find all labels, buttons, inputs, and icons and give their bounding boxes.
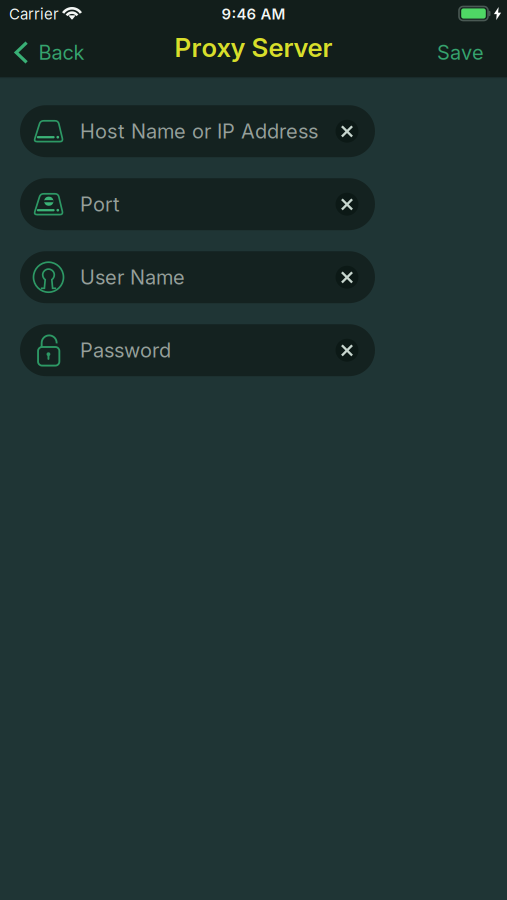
staticText: Save — [437, 40, 484, 65]
button[interactable]: Clear text — [335, 339, 358, 362]
button[interactable]: Clear text — [335, 193, 358, 216]
staticText: Proxy Server — [174, 32, 332, 63]
button[interactable]: Port — [20, 178, 375, 230]
button[interactable]: Password — [20, 324, 375, 376]
staticText: User Name — [80, 265, 185, 289]
button[interactable]: Host Name or IP Address — [20, 105, 375, 157]
staticText: Back — [38, 40, 84, 65]
staticText: 9:46 AM — [221, 5, 285, 23]
staticText: Host Name or IP Address — [80, 119, 318, 143]
button[interactable]: Save — [437, 41, 507, 66]
button[interactable]: Back — [0, 41, 84, 66]
button[interactable]: User Name — [20, 251, 375, 303]
button[interactable]: Clear text — [335, 120, 358, 143]
staticText: Password — [80, 338, 171, 362]
button[interactable]: Clear text — [335, 266, 358, 289]
staticText: Carrier — [9, 5, 59, 23]
staticText: Port — [80, 192, 120, 216]
